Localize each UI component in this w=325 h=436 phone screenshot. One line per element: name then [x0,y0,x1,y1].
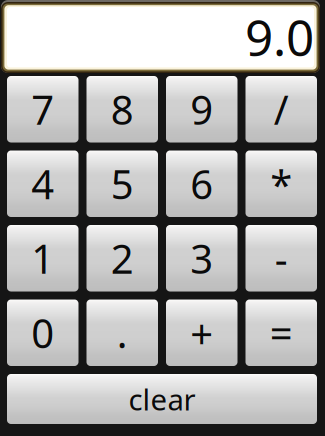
button[interactable]: 4 [7,150,78,217]
button[interactable]: 0 [7,299,78,366]
staticText: / [274,82,289,136]
button[interactable]: * [245,150,317,217]
button[interactable]: 9 [166,76,237,142]
staticText: 2 [111,231,134,285]
staticText: 6 [190,156,213,211]
button[interactable]: 8 [86,76,158,142]
staticText: 8 [111,82,134,136]
button[interactable]: / [245,76,317,142]
staticText: 5 [111,156,134,211]
button[interactable]: . [86,299,158,366]
button[interactable]: 2 [86,225,158,291]
staticText: clear [128,379,195,419]
staticText: = [270,305,293,360]
staticText: + [190,305,213,360]
staticText: 7 [31,82,54,136]
button[interactable]: clear [7,374,317,424]
button[interactable]: - [245,225,317,291]
button[interactable]: 1 [7,225,78,291]
staticText: . [117,305,128,360]
staticText: 1 [31,231,54,285]
button[interactable]: = [245,299,317,366]
staticText: 3 [190,231,213,285]
staticText: - [275,231,288,285]
staticText: 9.0 [245,3,314,70]
button[interactable]: 5 [86,150,158,217]
staticText: 9 [190,82,213,136]
staticText: 0 [31,305,54,360]
button[interactable]: + [166,299,237,366]
button[interactable]: 3 [166,225,237,291]
button[interactable]: 6 [166,150,237,217]
staticText: 4 [31,156,54,211]
button[interactable]: 7 [7,76,78,142]
staticText: * [270,156,292,211]
